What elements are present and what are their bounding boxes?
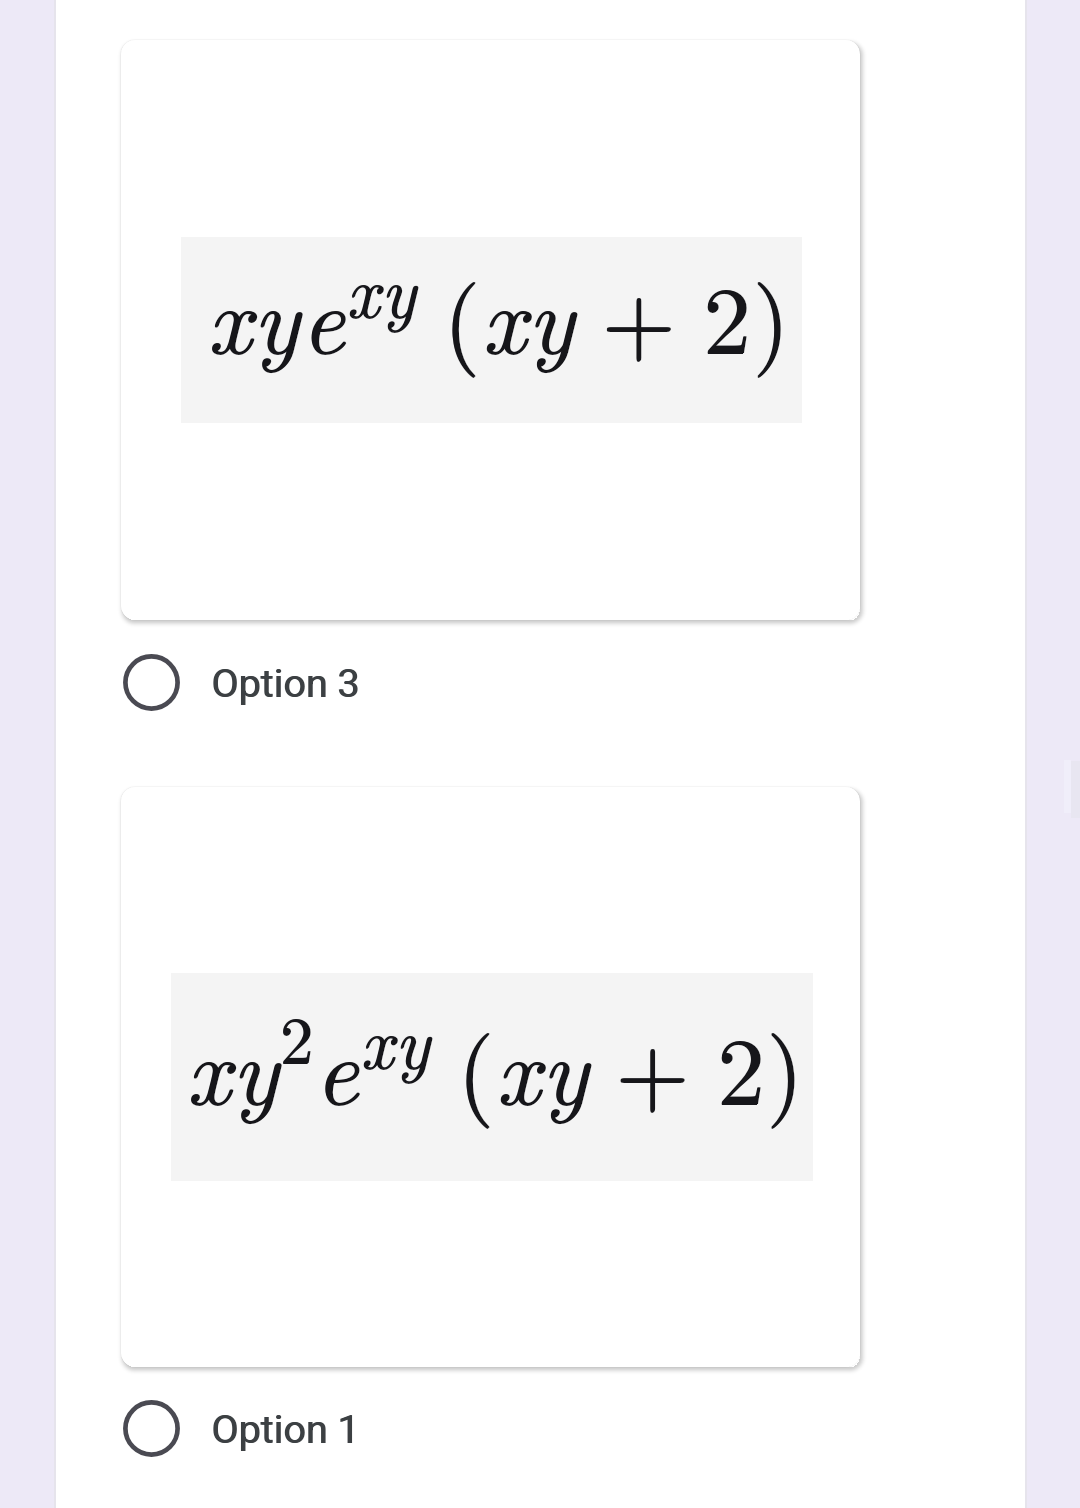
button[interactable]: Select Option 3 — [123, 654, 623, 711]
staticText: Option 3 — [211, 660, 360, 706]
staticText: xy2exy (xy + 2) — [187, 988, 806, 1132]
button[interactable]: Answer choice x y squared e to the power… — [121, 787, 860, 1367]
other: Select Option 3 — [123, 654, 180, 711]
staticText: xy2exy (xy + 2) — [186, 988, 805, 1132]
other: Select Option 1 — [123, 1400, 180, 1457]
staticText: Option 3 — [212, 660, 361, 706]
staticText: xy2exy (xy + 2) — [186, 989, 805, 1133]
staticText: xyexy (xy + 2) — [207, 238, 791, 382]
staticText: Option 1 — [212, 1406, 361, 1452]
staticText: xyexy (xy + 2) — [207, 237, 791, 381]
button[interactable]: Select Option 1 — [123, 1400, 623, 1457]
staticText: Option 1 — [211, 1406, 360, 1452]
button[interactable]: Answer choice x y e to the power x y tim… — [121, 40, 860, 620]
staticText: xyexy (xy + 2) — [208, 237, 792, 381]
